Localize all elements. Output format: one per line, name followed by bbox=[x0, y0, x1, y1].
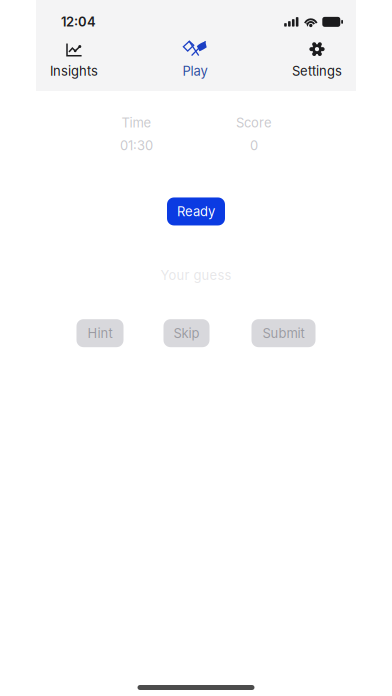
button[interactable]: Skip bbox=[163, 319, 209, 347]
button[interactable]: Hint bbox=[76, 319, 123, 347]
staticText: 01:30 bbox=[120, 138, 153, 153]
staticText: 0 bbox=[250, 138, 258, 153]
staticText: Hint bbox=[87, 325, 112, 341]
staticText: Skip bbox=[173, 325, 199, 341]
button[interactable]: Submit bbox=[251, 319, 315, 347]
staticText: Play bbox=[182, 63, 207, 79]
button[interactable]: Ready bbox=[167, 197, 225, 225]
staticText: Your guess bbox=[160, 267, 231, 283]
staticText: Settings bbox=[292, 63, 342, 79]
staticText: Ready bbox=[177, 204, 215, 219]
staticText: Submit bbox=[262, 325, 304, 341]
button[interactable]: Insights bbox=[50, 43, 98, 79]
button[interactable]: Play bbox=[182, 40, 207, 79]
staticText: Insights bbox=[50, 63, 98, 79]
staticText: Score bbox=[236, 115, 272, 131]
staticText: Time bbox=[121, 115, 151, 131]
button[interactable]: Settings bbox=[292, 42, 342, 79]
staticText: 12:04 bbox=[61, 14, 96, 30]
